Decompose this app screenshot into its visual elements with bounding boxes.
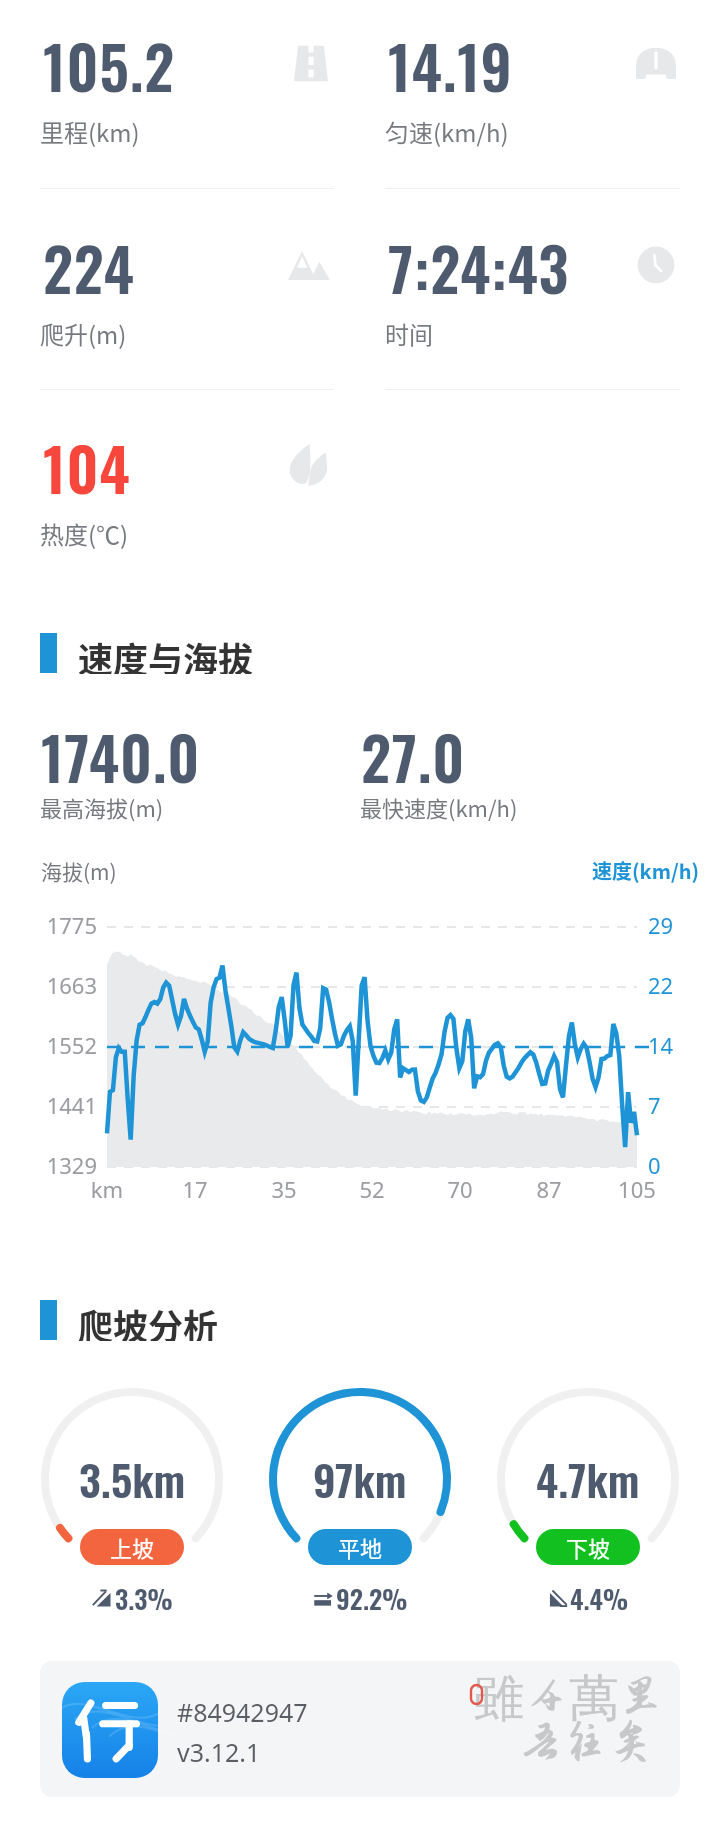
staticText: 52 bbox=[342, 1174, 402, 1204]
staticText: 3.5km bbox=[79, 1447, 186, 1511]
staticText: 爬升(m) bbox=[40, 316, 127, 351]
staticText: 最高海拔(m) bbox=[40, 791, 164, 823]
staticText: 速度(km/h) bbox=[592, 856, 700, 885]
staticText: 1663 bbox=[0, 970, 97, 1000]
staticText: 里程(km) bbox=[40, 114, 140, 149]
staticText: 7 bbox=[648, 1090, 661, 1120]
staticText: 70 bbox=[430, 1174, 490, 1204]
staticText: #84942947 bbox=[177, 1695, 308, 1729]
staticText: 105 bbox=[607, 1174, 667, 1204]
other: Elevation gain bbox=[288, 251, 330, 280]
button[interactable]: 104 bbox=[34, 420, 334, 570]
staticText: 速度与海拔 bbox=[78, 632, 254, 674]
staticText: 1740.0 bbox=[41, 713, 201, 800]
staticText: 上坡 bbox=[110, 1531, 155, 1563]
staticText: 海拔(m) bbox=[41, 856, 117, 886]
staticText: 22 bbox=[648, 970, 674, 1000]
staticText: 4.7km bbox=[536, 1447, 640, 1511]
button[interactable]: 速度与海拔 bbox=[40, 632, 254, 674]
staticText: 224 bbox=[43, 224, 135, 311]
staticText: 雖千萬里 bbox=[474, 1667, 664, 1730]
staticText: v3.12.1 bbox=[177, 1735, 261, 1769]
button[interactable]: 7:24:43 bbox=[379, 220, 679, 370]
button[interactable]: 224 bbox=[34, 220, 334, 370]
staticText: 最快速度(km/h) bbox=[360, 791, 518, 823]
staticText: 104 bbox=[43, 424, 131, 511]
other: Average speed bbox=[636, 46, 676, 79]
staticText: 平地 bbox=[338, 1531, 383, 1563]
staticText: 14.19 bbox=[388, 22, 513, 109]
staticText: 105.2 bbox=[43, 22, 175, 109]
staticText: 匀速(km/h) bbox=[385, 114, 509, 149]
other: Calories bbox=[289, 444, 327, 486]
staticText: 1441 bbox=[0, 1090, 97, 1120]
staticText: 1775 bbox=[0, 910, 97, 940]
staticText: 下坡 bbox=[566, 1531, 611, 1563]
staticText: 7:24:43 bbox=[388, 224, 570, 311]
staticText: 97km bbox=[313, 1447, 407, 1511]
other: Duration bbox=[636, 245, 676, 285]
button[interactable]: 平地 bbox=[308, 1529, 412, 1565]
staticText: 29 bbox=[648, 910, 674, 940]
staticText: 17 bbox=[165, 1174, 225, 1204]
staticText: 时间 bbox=[385, 316, 433, 351]
staticText: 0 bbox=[648, 1150, 661, 1180]
button[interactable]: 105.2 bbox=[34, 18, 334, 168]
staticText: 爬坡分析 bbox=[78, 1299, 219, 1341]
staticText: 1329 bbox=[0, 1150, 97, 1180]
button[interactable]: 14.19 bbox=[379, 18, 679, 168]
button[interactable]: 爬坡分析 bbox=[40, 1299, 219, 1341]
button[interactable]: #84942947 bbox=[40, 1661, 680, 1797]
staticText: 87 bbox=[519, 1174, 579, 1204]
staticText: 14 bbox=[648, 1030, 674, 1060]
button[interactable]: 下坡 bbox=[536, 1529, 640, 1565]
staticText: 35 bbox=[254, 1174, 314, 1204]
staticText: 92.2% bbox=[336, 1579, 408, 1618]
other: Distance bbox=[294, 45, 328, 82]
staticText: km bbox=[77, 1174, 137, 1204]
staticText: 3.3% bbox=[115, 1579, 173, 1618]
staticText: 热度(℃) bbox=[40, 516, 129, 551]
staticText: 4.4% bbox=[570, 1579, 629, 1618]
staticText: 1552 bbox=[0, 1030, 97, 1060]
button[interactable]: 上坡 bbox=[80, 1529, 184, 1565]
staticText: 27.0 bbox=[361, 713, 466, 800]
staticText: 吾往矣 bbox=[518, 1717, 653, 1767]
